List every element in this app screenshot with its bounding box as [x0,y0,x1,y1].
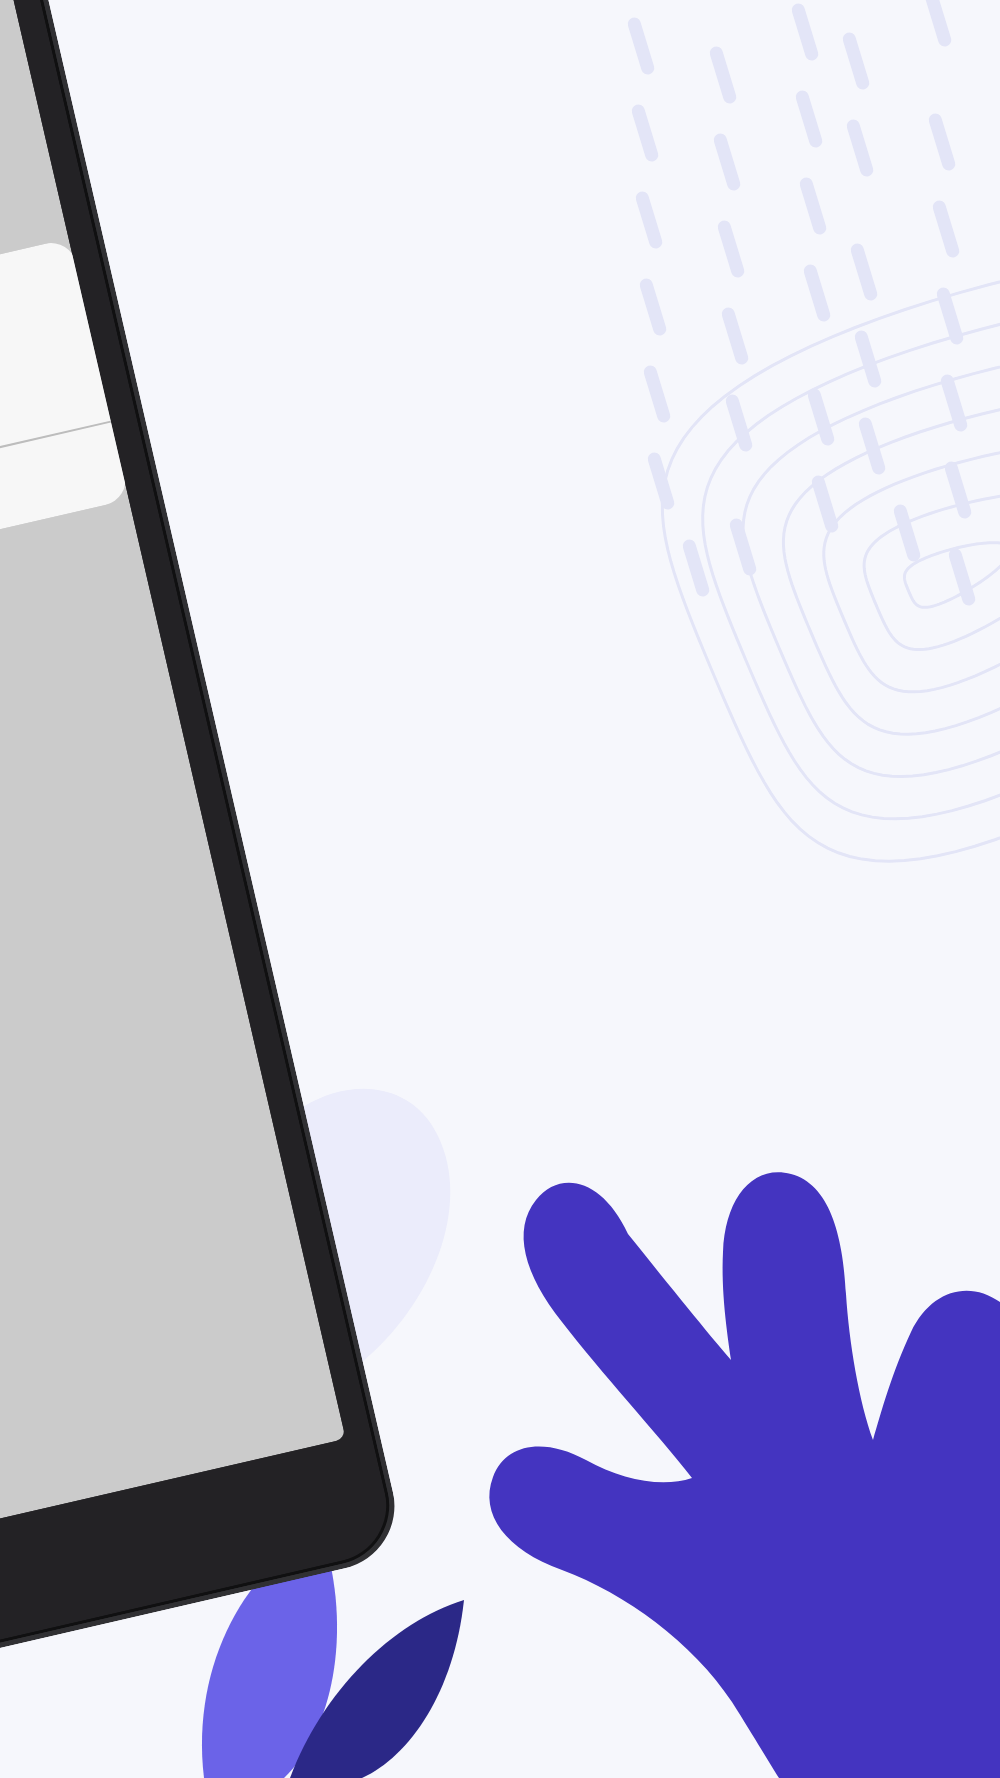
button[interactable]: Phone showing saved dialog [0,0,407,1768]
button[interactable]: All done! [0,238,129,616]
